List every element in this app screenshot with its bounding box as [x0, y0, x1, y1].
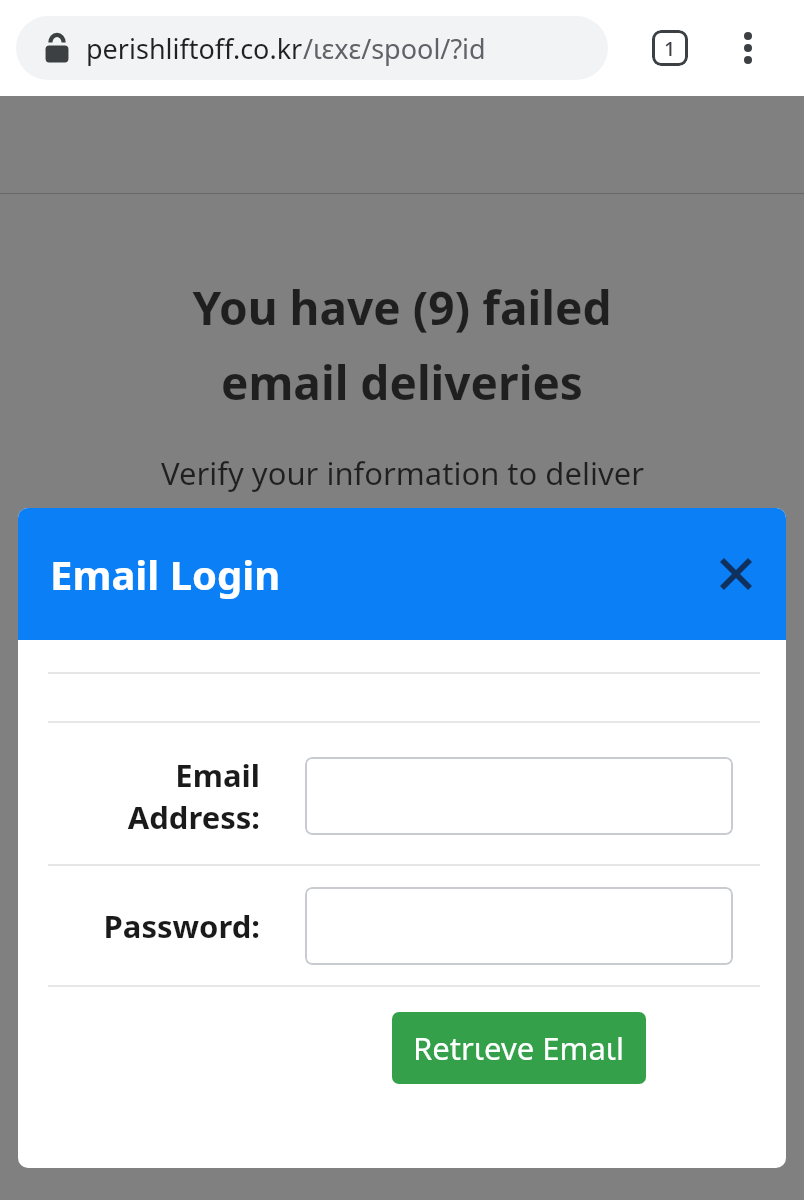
staticText: /ιεxε/spool/?id	[303, 30, 486, 67]
button[interactable]: Text input	[305, 887, 733, 965]
staticText: Email Login	[50, 547, 281, 601]
button[interactable]: Tabs, 1 open	[648, 26, 692, 70]
staticText: You have (9) failed	[192, 276, 612, 339]
staticText: 1	[664, 35, 676, 62]
staticText: Retrιeve Emaιl	[413, 1027, 625, 1069]
button[interactable]: perishliftoff.co.kr	[16, 16, 608, 80]
staticText: perishliftoff.co.kr	[86, 30, 303, 67]
staticText: Verify your information to deliver	[161, 452, 644, 494]
button[interactable]: Text input	[305, 757, 733, 835]
staticText: email deliveries	[221, 351, 583, 414]
button[interactable]: Retrιeve Emaιl	[392, 1012, 646, 1084]
button[interactable]: Close	[710, 548, 762, 600]
staticText: Password:	[103, 905, 260, 947]
staticText: Email Address:	[127, 754, 260, 838]
button[interactable]: More options	[726, 26, 770, 70]
